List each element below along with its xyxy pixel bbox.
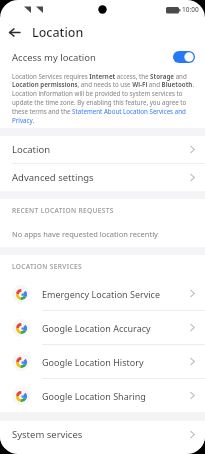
staticText: Advanced settings [12,171,94,184]
button[interactable]: Google Location History [0,345,205,378]
button[interactable]: Access my location toggle [173,51,195,63]
staticText: Access my location [12,51,96,64]
button[interactable]: System services [0,421,205,448]
button[interactable]: Advanced settings [0,164,205,191]
staticText: LOCATION SERVICES [12,262,82,271]
staticText: System services [12,428,83,441]
button[interactable]: Emergency Location Service [0,277,205,310]
button[interactable]: Location [0,136,205,163]
staticText: Location [12,143,51,156]
button[interactable]: Google Location Sharing [0,379,205,412]
staticText: Location Services requires Internet acce… [12,72,195,125]
button[interactable]: Access my location [0,46,205,68]
staticText: Google Location Accuracy [42,322,151,334]
staticText: Emergency Location Service [42,288,161,300]
staticText: Google Location History [42,356,144,368]
staticText: Location [32,24,84,41]
button[interactable]: Google Location Accuracy [0,311,205,344]
staticText: No apps have requested location recently [12,229,158,239]
staticText: 10:00 [182,5,199,14]
button[interactable]: Back [0,18,28,46]
staticText: Google Location Sharing [42,390,146,402]
staticText: RECENT LOCATION REQUESTS [12,206,114,215]
